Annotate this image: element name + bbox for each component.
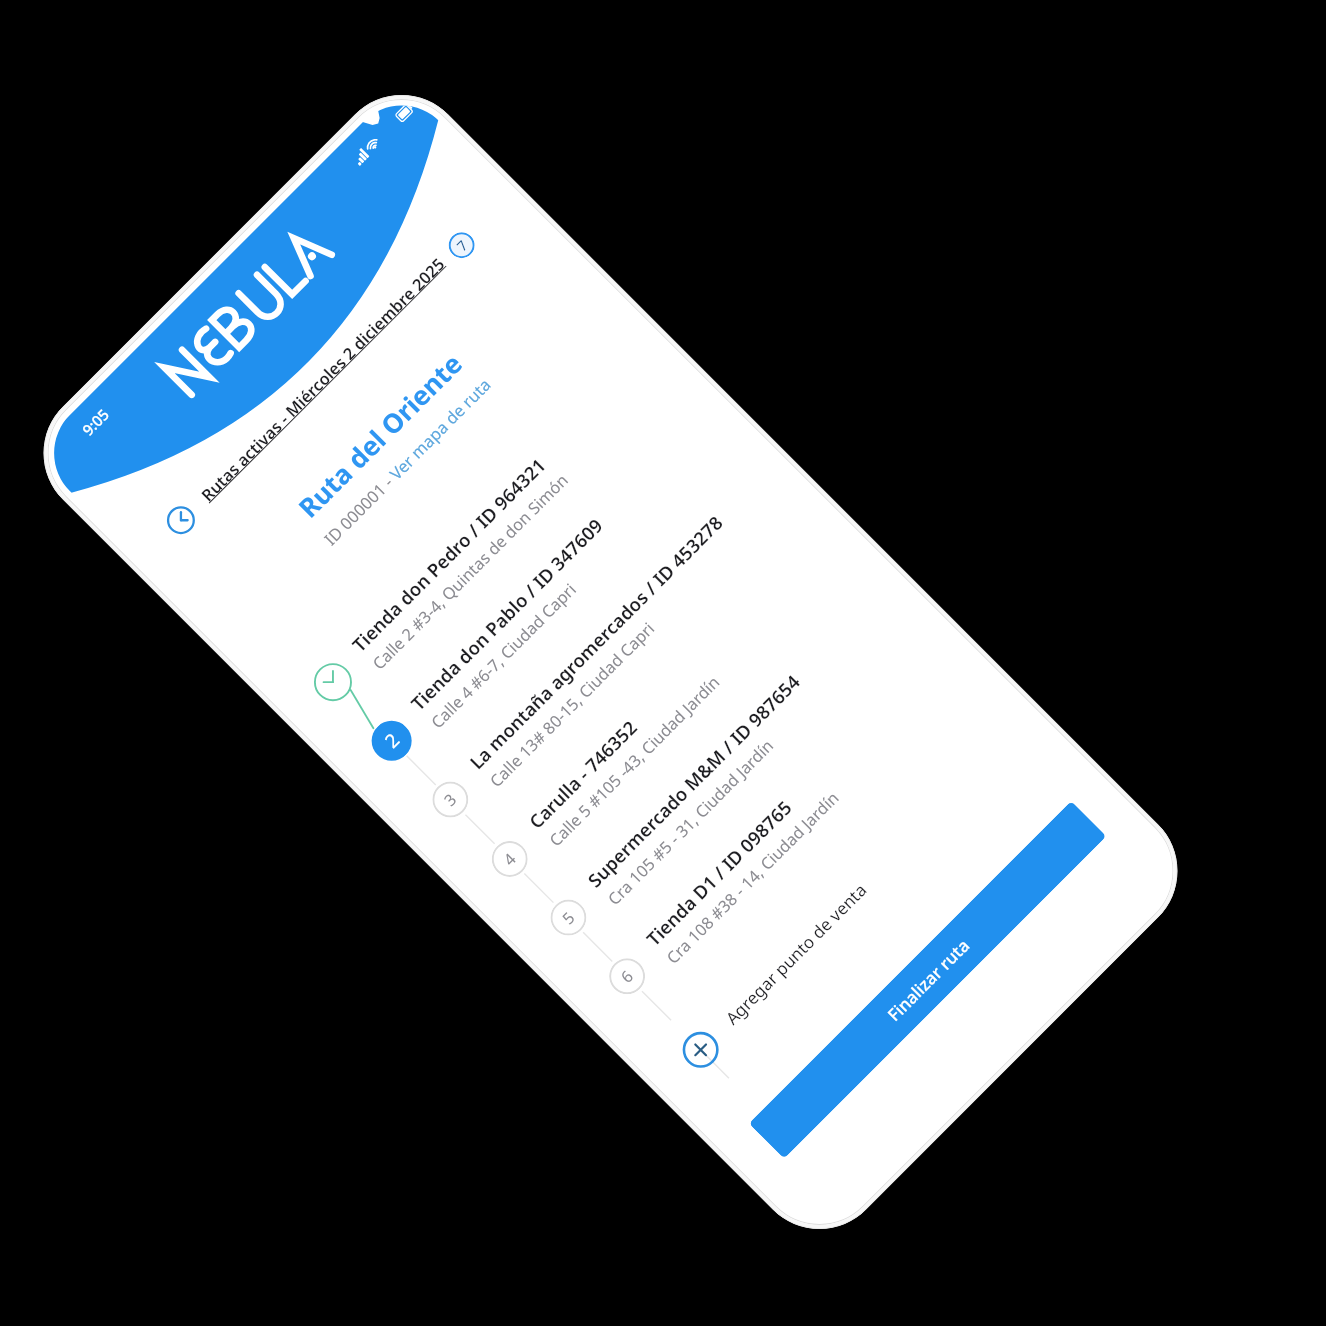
staticText: Rutas activas - Miércoles 2 diciembre 20… [196,252,449,505]
button[interactable]: Rutas activas - Miércoles 2 diciembre 20… [196,252,449,505]
staticText: 7 [452,235,472,255]
staticText: Cra 108 #38 - 14, Ciudad Jardín [662,787,843,968]
staticText: Carulla - 746352 [523,715,642,833]
staticText: Tienda don Pedro / ID 964321 [346,452,551,657]
button[interactable]: ID 000001 - Ver mapa de ruta [319,373,495,549]
staticText: Calle 2 #3-4, Quintas de don Simón [368,469,573,674]
staticText: Finalizar ruta [882,934,974,1026]
staticText: Tienda don Pablo / ID 347609 [405,512,608,715]
staticText: Supermercado M&M / ID 987654 [582,669,805,892]
staticText: 3 [439,788,462,811]
button[interactable] [515,567,919,971]
staticText: 6 [616,965,638,988]
button[interactable] [339,390,742,794]
staticText: Cra 105 #5 - 31, Ciudad Jardín [603,734,778,910]
button[interactable]: Agregar punto de venta [675,1024,726,1075]
staticText: 5 [557,906,580,929]
button[interactable] [457,508,860,912]
staticText: 2 [379,727,405,754]
button[interactable] [397,449,801,853]
staticText: 9:05 [78,404,113,440]
staticText: Agregar punto de venta [720,878,872,1029]
staticText: 4 [498,848,521,870]
button[interactable]: 7 [443,227,480,264]
button[interactable]: Horario de rutas [161,500,201,540]
staticText: Calle 13# 80-15, Ciudad Capri [485,617,660,792]
button[interactable] [280,331,684,735]
button[interactable] [574,626,978,1029]
button[interactable]: Finalizar ruta [749,801,1106,1159]
staticText: Tienda D1 / ID 098765 [641,795,797,951]
staticText: Ruta del Oriente [290,346,470,525]
staticText: Calle 5 #105 -43, Ciudad Jardín [544,671,725,851]
staticText: La montaña agromercados / ID 453278 [464,510,728,774]
button[interactable] [648,699,1051,1103]
staticText: Calle 4 #6-7, Ciudad Capri [426,578,581,733]
